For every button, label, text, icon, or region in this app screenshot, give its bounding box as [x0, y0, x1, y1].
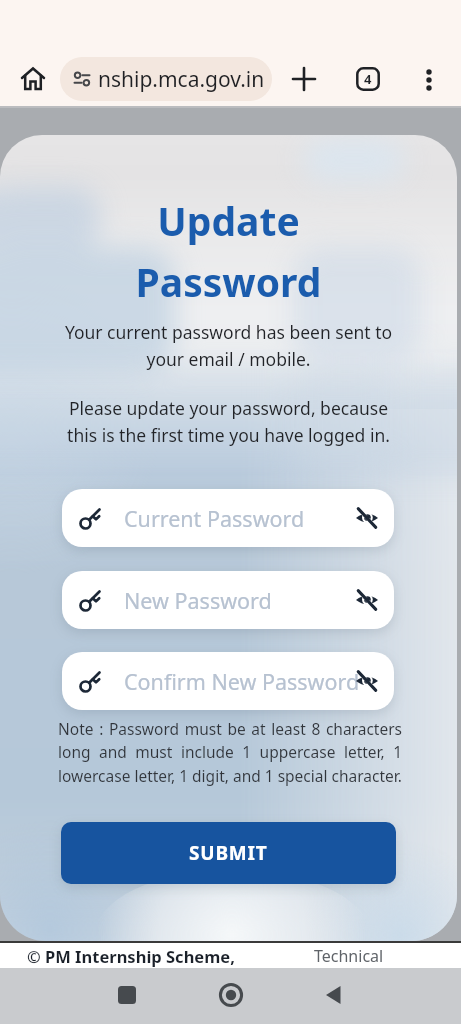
button[interactable] [422, 68, 436, 92]
button[interactable] [324, 985, 344, 1005]
staticText: New Password [124, 586, 272, 615]
staticText: Current Password [124, 504, 305, 533]
staticText: SUBMIT [189, 840, 268, 866]
button[interactable]: 4 [356, 67, 380, 91]
button[interactable] [118, 986, 136, 1004]
staticText: Confirm New Password [124, 667, 360, 696]
staticText: Technical [314, 945, 384, 967]
button[interactable] [18, 64, 48, 94]
staticText: Note : Password must be at least 8 chara… [58, 718, 402, 787]
button[interactable]: Confirm New Password [62, 652, 394, 710]
staticText: nship.mca.gov.in [98, 65, 265, 94]
staticText: 4 [364, 70, 372, 88]
staticText: © PM Internship Scheme, [27, 945, 235, 967]
button[interactable] [290, 65, 318, 93]
staticText: Your current password has been sent to y… [0, 320, 457, 371]
button[interactable]: Current Password [62, 489, 394, 547]
button[interactable]: SUBMIT [61, 822, 396, 884]
button[interactable]: New Password [62, 571, 394, 629]
staticText: Update Password [0, 194, 457, 308]
button[interactable]: nship.mca.gov.in [60, 57, 272, 101]
button[interactable] [219, 983, 243, 1007]
staticText: Please update your password, because thi… [0, 396, 457, 447]
